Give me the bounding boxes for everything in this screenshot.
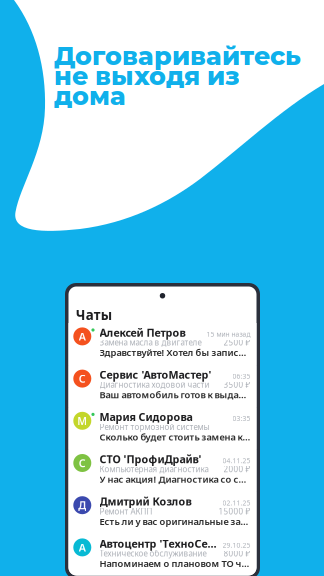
staticText: Напоминаем о плановом ТО через 500 к… xyxy=(99,557,250,570)
staticText: Есть ли у вас оригинальные запчасти дл… xyxy=(99,515,250,527)
staticText: не выходя из xyxy=(54,61,239,91)
button[interactable]: А xyxy=(68,534,256,576)
staticText: Автоцентр 'ТехноСервис' xyxy=(99,536,219,551)
button[interactable]: С xyxy=(68,365,256,407)
button[interactable]: М xyxy=(68,407,256,450)
staticText: С xyxy=(79,371,86,386)
button[interactable]: А xyxy=(68,323,256,365)
staticText: 15 мин назад xyxy=(206,330,250,338)
staticText: 02.11.25 xyxy=(222,498,250,507)
button[interactable]: Д xyxy=(68,492,256,534)
staticText: Дмитрий Козлов xyxy=(99,494,191,508)
staticText: 15000 ₽ xyxy=(218,506,250,517)
staticText: Здравствуйте! Хотел бы записаться на з… xyxy=(99,346,250,359)
staticText: СТО 'ПрофиДрайв' xyxy=(99,452,201,466)
staticText: Диагностика ходовой части xyxy=(99,379,209,390)
staticText: А xyxy=(79,329,86,343)
staticText: 2500 ₽ xyxy=(223,337,250,348)
staticText: Замена масла в двигателе xyxy=(99,337,201,348)
staticText: Компьютерная диагностика xyxy=(99,464,208,474)
staticText: Сервис 'АвтоМастер' xyxy=(99,368,211,382)
staticText: Чаты xyxy=(76,306,112,324)
staticText: 2000 ₽ xyxy=(223,464,250,474)
staticText: Сколько будет стоить замена колодок на… xyxy=(99,431,250,443)
staticText: М xyxy=(77,414,87,428)
staticText: 06:35 xyxy=(232,372,250,381)
staticText: 03:35 xyxy=(232,414,250,423)
staticText: С xyxy=(79,456,86,470)
button[interactable]: С xyxy=(68,450,256,492)
staticText: 3500 ₽ xyxy=(223,379,250,390)
staticText: Ваш автомобиль готов к выдаче. Приез… xyxy=(99,388,250,401)
staticText: Ремонт АКПП xyxy=(99,506,152,517)
staticText: Мария Сидорова xyxy=(99,410,192,424)
staticText: 29.10.25 xyxy=(222,541,250,549)
staticText: А xyxy=(79,540,86,554)
staticText: Техническое обслуживание xyxy=(99,548,206,559)
staticText: Алексей Петров xyxy=(99,325,185,340)
staticText: У нас акция! Диагностика со скидкой 20… xyxy=(99,473,250,485)
staticText: Договаривайтесь xyxy=(54,41,301,71)
staticText: Д xyxy=(78,498,86,512)
staticText: Ремонт тормозной системы xyxy=(99,422,209,432)
staticText: 04.11.25 xyxy=(222,456,250,465)
staticText: дома xyxy=(54,81,126,111)
staticText: 8000 ₽ xyxy=(223,548,250,559)
